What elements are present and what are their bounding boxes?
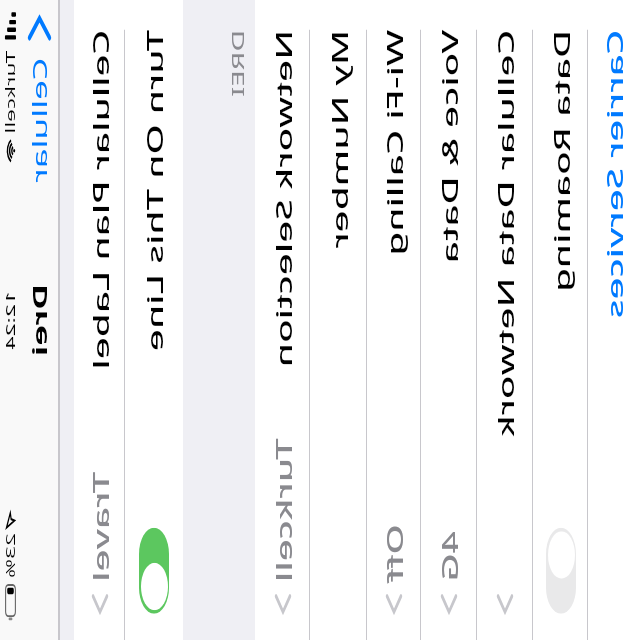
staticText: DREI [226, 30, 249, 98]
button[interactable]: Carrier Services [588, 0, 640, 640]
button[interactable]: On [139, 528, 169, 614]
staticText: 23% [1, 533, 19, 579]
staticText: Cellular [26, 58, 53, 184]
staticText: Data Roaming [546, 30, 576, 293]
staticText: Travel [85, 472, 115, 582]
button[interactable]: Cellular Plan Label [74, 0, 125, 640]
button[interactable]: Back [26, 16, 53, 184]
staticText: 12:24 [1, 291, 19, 351]
staticText: 4G [434, 531, 464, 582]
staticText: Turkcell [268, 438, 298, 582]
staticText: Network Selection [268, 30, 298, 368]
staticText: Cellular Plan Label [85, 30, 115, 370]
staticText: Wi-Fi Calling [379, 30, 409, 256]
staticText: Cellular Data Network [490, 30, 520, 438]
button[interactable]: Network Selection [255, 0, 310, 640]
button[interactable]: My Number [310, 0, 367, 640]
staticText: Voice & Data [434, 30, 464, 265]
button[interactable]: Off [546, 528, 576, 614]
staticText: Turn On This Line [139, 30, 169, 352]
other: Back [28, 16, 51, 40]
button[interactable]: Data Roaming [533, 0, 588, 640]
button[interactable]: Cellular Data Network [477, 0, 533, 640]
staticText: Carrier Services [599, 30, 629, 319]
staticText: My Number [324, 30, 354, 249]
staticText: Drei [26, 284, 53, 358]
staticText: Turkcell [1, 51, 19, 135]
button[interactable]: Wi-Fi Calling [367, 0, 421, 640]
button[interactable]: Turn On This Line [125, 0, 183, 640]
staticText: Off [379, 524, 409, 582]
button[interactable]: Voice & Data [421, 0, 477, 640]
